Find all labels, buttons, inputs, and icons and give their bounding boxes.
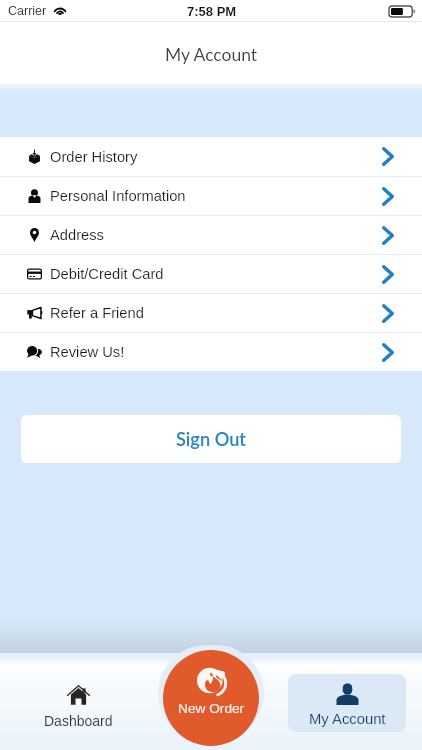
staticText: Sign Out bbox=[176, 428, 246, 450]
staticText: Order History bbox=[50, 149, 138, 165]
staticText: Review Us! bbox=[50, 344, 125, 360]
button[interactable]: Dashboard bbox=[18, 684, 138, 742]
staticText: New Order bbox=[178, 701, 245, 716]
staticText: Address bbox=[50, 227, 104, 243]
button[interactable]: Sign Out bbox=[21, 415, 401, 463]
button[interactable]: Debit/Credit Card bbox=[0, 255, 422, 293]
staticText: Refer a Friend bbox=[50, 305, 144, 321]
button[interactable]: Review Us! bbox=[0, 333, 422, 371]
button[interactable]: Refer a Friend bbox=[0, 294, 422, 332]
staticText: Dashboard bbox=[44, 713, 113, 729]
button[interactable]: Address bbox=[0, 216, 422, 254]
staticText: 7:58 PM bbox=[187, 4, 237, 19]
button[interactable]: New Order bbox=[163, 650, 259, 746]
staticText: Debit/Credit Card bbox=[50, 266, 164, 282]
staticText: My Account bbox=[309, 711, 386, 728]
staticText: Personal Information bbox=[50, 188, 186, 204]
button[interactable]: My Account bbox=[288, 674, 406, 732]
staticText: Carrier bbox=[8, 4, 47, 18]
staticText: My Account bbox=[165, 44, 258, 65]
button[interactable]: Personal Information bbox=[0, 177, 422, 215]
button[interactable]: Order History bbox=[0, 137, 422, 176]
